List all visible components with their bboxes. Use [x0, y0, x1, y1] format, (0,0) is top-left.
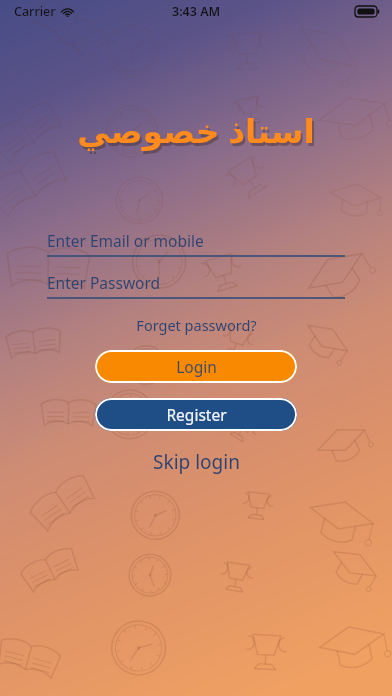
staticText: Skip login: [153, 449, 240, 475]
button[interactable]: Enter Email or mobile: [47, 225, 345, 257]
staticText: Enter Email or mobile: [47, 230, 204, 251]
button[interactable]: Skip login: [143, 445, 250, 479]
staticText: استاذ خصوصي: [79, 111, 317, 156]
button[interactable]: Register: [95, 398, 297, 431]
staticText: Enter Password: [47, 272, 161, 293]
staticText: استاذ خصوصي: [77, 108, 315, 153]
staticText: Register: [166, 404, 227, 425]
button[interactable]: Login: [95, 350, 297, 383]
staticText: Forget password?: [136, 315, 257, 335]
staticText: Carrier: [14, 3, 56, 20]
staticText: 3:43 AM: [172, 3, 221, 20]
button[interactable]: Enter Password: [47, 267, 345, 299]
staticText: Login: [176, 356, 217, 377]
button[interactable]: Forget password?: [128, 312, 265, 338]
